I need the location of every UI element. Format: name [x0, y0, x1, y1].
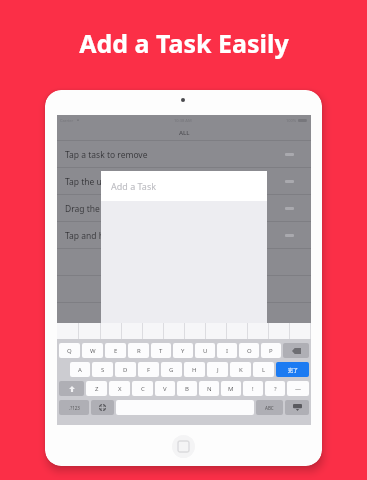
staticText: Q	[67, 347, 72, 355]
staticText: P	[269, 347, 273, 355]
staticText: X	[118, 385, 122, 393]
staticText: H	[192, 366, 197, 374]
button[interactable]: Add a Task	[101, 171, 267, 201]
staticText: S	[101, 366, 105, 374]
button[interactable]: Q	[59, 343, 80, 358]
staticText: K	[239, 366, 243, 374]
staticText: I	[226, 347, 229, 355]
staticText: 100%	[286, 118, 297, 123]
button[interactable]: K	[230, 362, 251, 377]
staticText: Tap a task to remove	[65, 149, 148, 161]
button[interactable]: R	[128, 343, 149, 358]
button[interactable]: F	[138, 362, 159, 377]
button[interactable]: T	[151, 343, 171, 358]
staticText: C	[141, 385, 145, 393]
staticText: !	[252, 385, 254, 393]
button[interactable]: —	[287, 381, 309, 396]
button[interactable]: Tap the undo to cancel	[57, 168, 311, 195]
staticText: F	[147, 366, 151, 374]
button[interactable]: H	[184, 362, 205, 377]
button[interactable]: N	[199, 381, 219, 396]
staticText: T	[159, 347, 163, 355]
staticText: E	[114, 347, 118, 355]
staticText: ALL	[179, 129, 190, 137]
staticText: L	[262, 366, 266, 374]
staticText: B	[185, 385, 189, 393]
button[interactable]: B	[177, 381, 197, 396]
button[interactable]: ?	[265, 381, 285, 396]
staticText: Tap the undo to cancel	[65, 176, 156, 188]
staticText: G	[169, 366, 174, 374]
button[interactable]: O	[239, 343, 259, 358]
staticText: A	[78, 366, 82, 374]
button[interactable]: W	[82, 343, 103, 358]
staticText: .?123	[69, 405, 80, 411]
button[interactable]: Tap a task to remove	[57, 141, 311, 168]
staticText: Add a Task	[111, 180, 157, 192]
button[interactable]: G	[161, 362, 182, 377]
button[interactable]: 完了	[276, 362, 309, 377]
staticText: R	[137, 347, 141, 355]
button[interactable]: U	[195, 343, 215, 358]
button[interactable]: Backspace	[283, 343, 309, 358]
staticText: ?	[274, 385, 277, 393]
staticText: V	[163, 385, 167, 393]
button[interactable]: J	[207, 362, 228, 377]
button[interactable]: .?123	[59, 400, 89, 415]
staticText: J	[217, 366, 219, 374]
button[interactable]: M	[221, 381, 241, 396]
button[interactable]: !	[243, 381, 263, 396]
button[interactable]: Drag the task to reorder	[57, 195, 311, 222]
staticText: M	[228, 385, 234, 393]
staticText: Carrier	[60, 118, 74, 123]
staticText: Drag the task to reorder	[65, 203, 162, 215]
staticText: U	[203, 347, 208, 355]
button[interactable]: V	[155, 381, 175, 396]
staticText: Add a Task Easily	[79, 26, 289, 60]
button[interactable]: P	[261, 343, 281, 358]
staticText: D	[123, 366, 128, 374]
button[interactable]: Home	[172, 435, 195, 458]
button[interactable]: X	[109, 381, 130, 396]
button[interactable]: D	[115, 362, 136, 377]
button[interactable]: S	[92, 362, 113, 377]
staticText: ABC	[265, 405, 274, 411]
staticText: O	[247, 347, 252, 355]
staticText: 10:38 AM	[174, 118, 192, 123]
staticText: 完了	[288, 367, 298, 373]
button[interactable]: E	[105, 343, 126, 358]
button[interactable]: A	[70, 362, 90, 377]
staticText: Z	[95, 385, 99, 393]
staticText: Y	[181, 347, 185, 355]
button[interactable]: C	[132, 381, 153, 396]
button[interactable]: Y	[173, 343, 193, 358]
button[interactable]: L	[253, 362, 274, 377]
staticText: W	[90, 347, 96, 355]
staticText: Tap and hold to edit	[65, 230, 145, 242]
button[interactable]: ABC	[256, 400, 283, 415]
button[interactable]: Z	[86, 381, 107, 396]
button[interactable]: Shift	[59, 381, 84, 396]
button[interactable]: Hide keyboard	[285, 400, 309, 415]
staticText: —	[295, 385, 302, 393]
button[interactable]: I	[217, 343, 237, 358]
button[interactable]: Tap and hold to edit	[57, 222, 311, 249]
button[interactable]: Switch keyboard language	[91, 400, 114, 415]
staticText: N	[207, 385, 212, 393]
